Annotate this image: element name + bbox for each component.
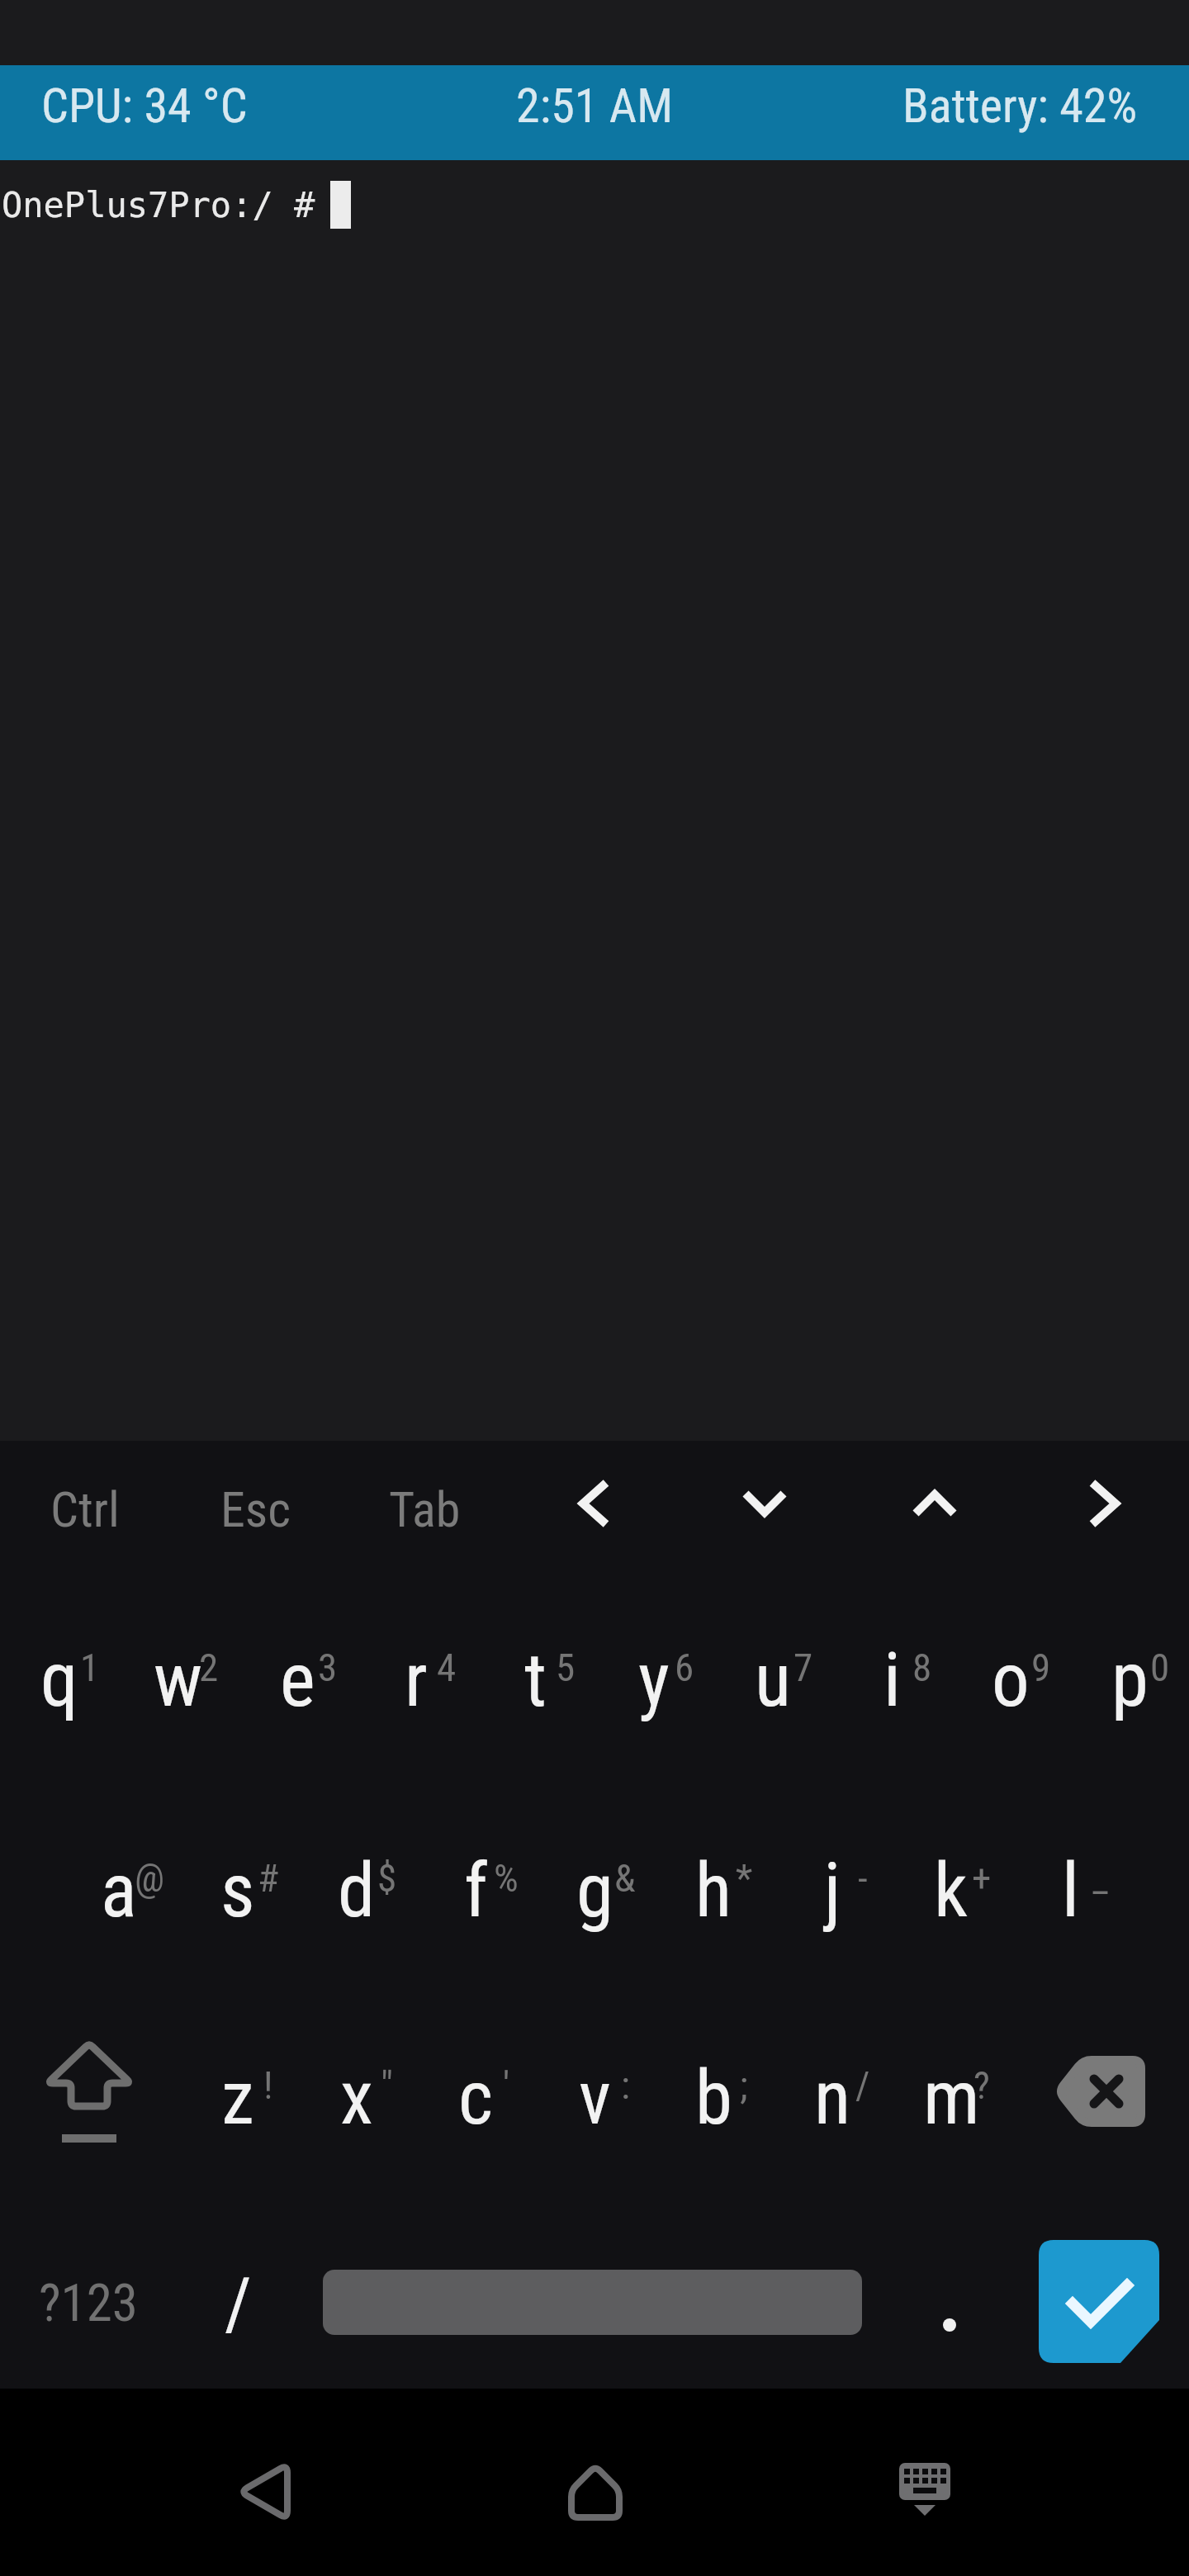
staticText: v	[579, 2054, 611, 2143]
staticText: x	[340, 2054, 373, 2143]
staticText: u	[755, 1636, 791, 1725]
staticText: -	[858, 1855, 868, 1901]
staticText: y	[638, 1636, 670, 1725]
staticText: 6	[675, 1645, 694, 1690]
staticText: Battery: 42%	[902, 78, 1138, 134]
button[interactable]: h	[656, 1796, 771, 1986]
staticText: o	[992, 1636, 1030, 1725]
button[interactable]: z	[180, 2003, 296, 2193]
staticText: g	[576, 1847, 613, 1935]
button[interactable]	[890, 2209, 1009, 2398]
staticText: 5	[556, 1645, 576, 1690]
button[interactable]: r	[358, 1585, 474, 1775]
staticText: %	[494, 1855, 519, 1901]
button[interactable]: ?123	[0, 2209, 177, 2398]
button[interactable]: u	[715, 1585, 831, 1775]
staticText: &	[614, 1855, 636, 1901]
staticText: 9	[1031, 1645, 1051, 1690]
button[interactable]: v	[537, 2003, 652, 2193]
button[interactable]: o	[953, 1585, 1068, 1775]
button[interactable]: d	[299, 1796, 414, 1986]
button[interactable]	[521, 2417, 670, 2566]
staticText: CPU: 34 °C	[41, 78, 248, 134]
staticText: Ctrl	[50, 1480, 120, 1538]
button[interactable]	[1019, 1435, 1189, 1571]
button[interactable]: b	[656, 2003, 771, 2193]
button[interactable]: s	[180, 1796, 296, 1986]
button[interactable]	[323, 2270, 862, 2335]
button[interactable]: g	[537, 1796, 652, 1986]
staticText: 4	[437, 1645, 457, 1690]
staticText: +	[972, 1855, 992, 1901]
staticText: n	[814, 2054, 851, 2143]
staticText: "	[381, 2062, 394, 2108]
staticText: w	[154, 1636, 203, 1725]
staticText: 3	[318, 1645, 338, 1690]
button[interactable]: m	[893, 2003, 1009, 2193]
staticText: p	[1111, 1636, 1149, 1725]
staticText: '	[503, 2062, 510, 2108]
staticText: d	[338, 1847, 376, 1935]
button[interactable]: f	[418, 1796, 533, 1986]
staticText: @	[135, 1855, 165, 1901]
staticText: z	[221, 2054, 254, 2143]
staticText: ?	[973, 2062, 990, 2108]
staticText: c	[458, 2054, 494, 2143]
button[interactable]: c	[418, 2003, 533, 2193]
staticText: _	[1092, 1855, 1109, 1901]
staticText: *	[736, 1855, 753, 1901]
button[interactable]	[509, 1435, 680, 1571]
button[interactable]	[850, 2414, 999, 2563]
button[interactable]: l	[1012, 1796, 1128, 1986]
staticText: j	[824, 1847, 841, 1935]
button[interactable]	[1011, 1996, 1189, 2186]
staticText: q	[40, 1636, 78, 1725]
button[interactable]	[680, 1435, 850, 1571]
staticText: 8	[912, 1645, 932, 1690]
staticText: 2	[199, 1645, 219, 1690]
staticText: m	[923, 2054, 980, 2143]
staticText: ;	[740, 2062, 748, 2108]
staticText: a	[101, 1847, 137, 1935]
button[interactable]: x	[299, 2003, 414, 2193]
staticText: e	[280, 1636, 315, 1725]
staticText: 7	[793, 1645, 813, 1690]
button[interactable]: a	[61, 1796, 177, 1986]
staticText: i	[883, 1636, 901, 1725]
button[interactable]: Esc	[170, 1441, 340, 1577]
staticText: b	[695, 2054, 732, 2143]
button[interactable]: k	[893, 1796, 1009, 1986]
button[interactable]	[0, 1995, 178, 2185]
staticText: f	[464, 1847, 488, 1935]
staticText: 0	[1150, 1645, 1170, 1690]
button[interactable]: t	[477, 1585, 593, 1775]
button[interactable]: Ctrl	[0, 1441, 170, 1577]
button[interactable]: Tab	[339, 1441, 509, 1577]
staticText: :	[621, 2062, 630, 2108]
staticText: 2:51 AM	[516, 78, 674, 134]
button[interactable]	[192, 2417, 340, 2566]
button[interactable]: e	[239, 1585, 355, 1775]
button[interactable]: p	[1072, 1585, 1187, 1775]
button[interactable]: /	[178, 2209, 297, 2398]
staticText: r	[405, 1636, 428, 1725]
staticText: h	[695, 1847, 732, 1935]
staticText: $	[377, 1855, 397, 1901]
staticText: /	[855, 2062, 870, 2108]
button[interactable]: y	[596, 1585, 712, 1775]
staticText: t	[524, 1636, 547, 1725]
staticText: /	[225, 2261, 252, 2346]
staticText: Esc	[220, 1480, 291, 1538]
button[interactable]: i	[834, 1585, 950, 1775]
button[interactable]	[850, 1435, 1020, 1571]
staticText: s	[220, 1847, 255, 1935]
button[interactable]	[1039, 2240, 1159, 2363]
staticText: Tab	[389, 1480, 461, 1538]
button[interactable]: q	[2, 1585, 117, 1775]
staticText: !	[263, 2062, 273, 2108]
button[interactable]: j	[775, 1796, 890, 1986]
staticText: ?123	[39, 2273, 138, 2334]
button[interactable]: w	[121, 1585, 236, 1775]
button[interactable]: n	[775, 2003, 890, 2193]
staticText: 1	[80, 1645, 100, 1690]
